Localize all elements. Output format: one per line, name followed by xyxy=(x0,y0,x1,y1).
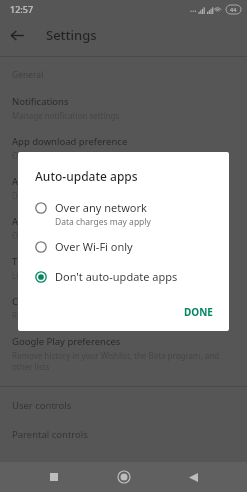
staticText: Over Wi-Fi only xyxy=(55,239,133,254)
button[interactable]: Auto-update apps xyxy=(0,175,247,201)
button[interactable]: App download preference xyxy=(0,135,247,161)
staticText: Auto-update apps xyxy=(35,168,138,184)
button[interactable]: Clear local search history xyxy=(0,295,247,321)
staticText: Light xyxy=(12,270,32,281)
button[interactable]: Over any network xyxy=(18,198,229,228)
staticText: User controls xyxy=(12,399,72,412)
button[interactable]: Auto-play videos xyxy=(0,215,247,241)
staticText: Over any network xyxy=(12,150,79,161)
staticText: Don't auto-update apps xyxy=(12,190,101,201)
button[interactable]: Back xyxy=(178,462,208,492)
staticText: Settings xyxy=(46,26,97,44)
staticText: App download preference xyxy=(12,135,128,148)
button[interactable]: Home xyxy=(109,462,139,492)
button[interactable]: Don't auto-update apps xyxy=(18,267,229,287)
staticText: Parental controls xyxy=(12,428,88,441)
button[interactable]: Recents xyxy=(39,462,69,492)
button[interactable]: Back xyxy=(0,18,34,52)
staticText: Remove searches you have performed from … xyxy=(12,310,218,321)
button[interactable]: Theme xyxy=(0,255,247,281)
staticText: Auto-play videos xyxy=(12,215,86,228)
staticText: Clear local search history xyxy=(12,295,124,308)
staticText: Over any network xyxy=(55,200,147,215)
staticText: Theme xyxy=(12,255,43,268)
button[interactable]: Over Wi-Fi only xyxy=(18,237,229,257)
staticText: Over Wi-Fi only xyxy=(12,230,69,241)
staticText: 12:57 xyxy=(10,3,34,15)
staticText: Don't auto-update apps xyxy=(55,269,178,284)
staticText: Data charges may apply xyxy=(55,216,151,228)
button[interactable]: DONE xyxy=(176,299,221,325)
button[interactable]: Google Play preferences xyxy=(0,335,247,372)
staticText: General xyxy=(12,69,44,81)
staticText: Notifications xyxy=(12,95,69,108)
staticText: Google Play preferences xyxy=(12,335,121,348)
staticText: Auto-update apps xyxy=(12,175,92,188)
staticText: 44 xyxy=(230,6,237,13)
staticText: DONE xyxy=(184,305,213,319)
staticText: Manage notification settings xyxy=(12,110,120,121)
button[interactable]: Notifications xyxy=(0,95,247,121)
staticText: Remove history in your Wishlist, the Bet… xyxy=(12,350,235,372)
